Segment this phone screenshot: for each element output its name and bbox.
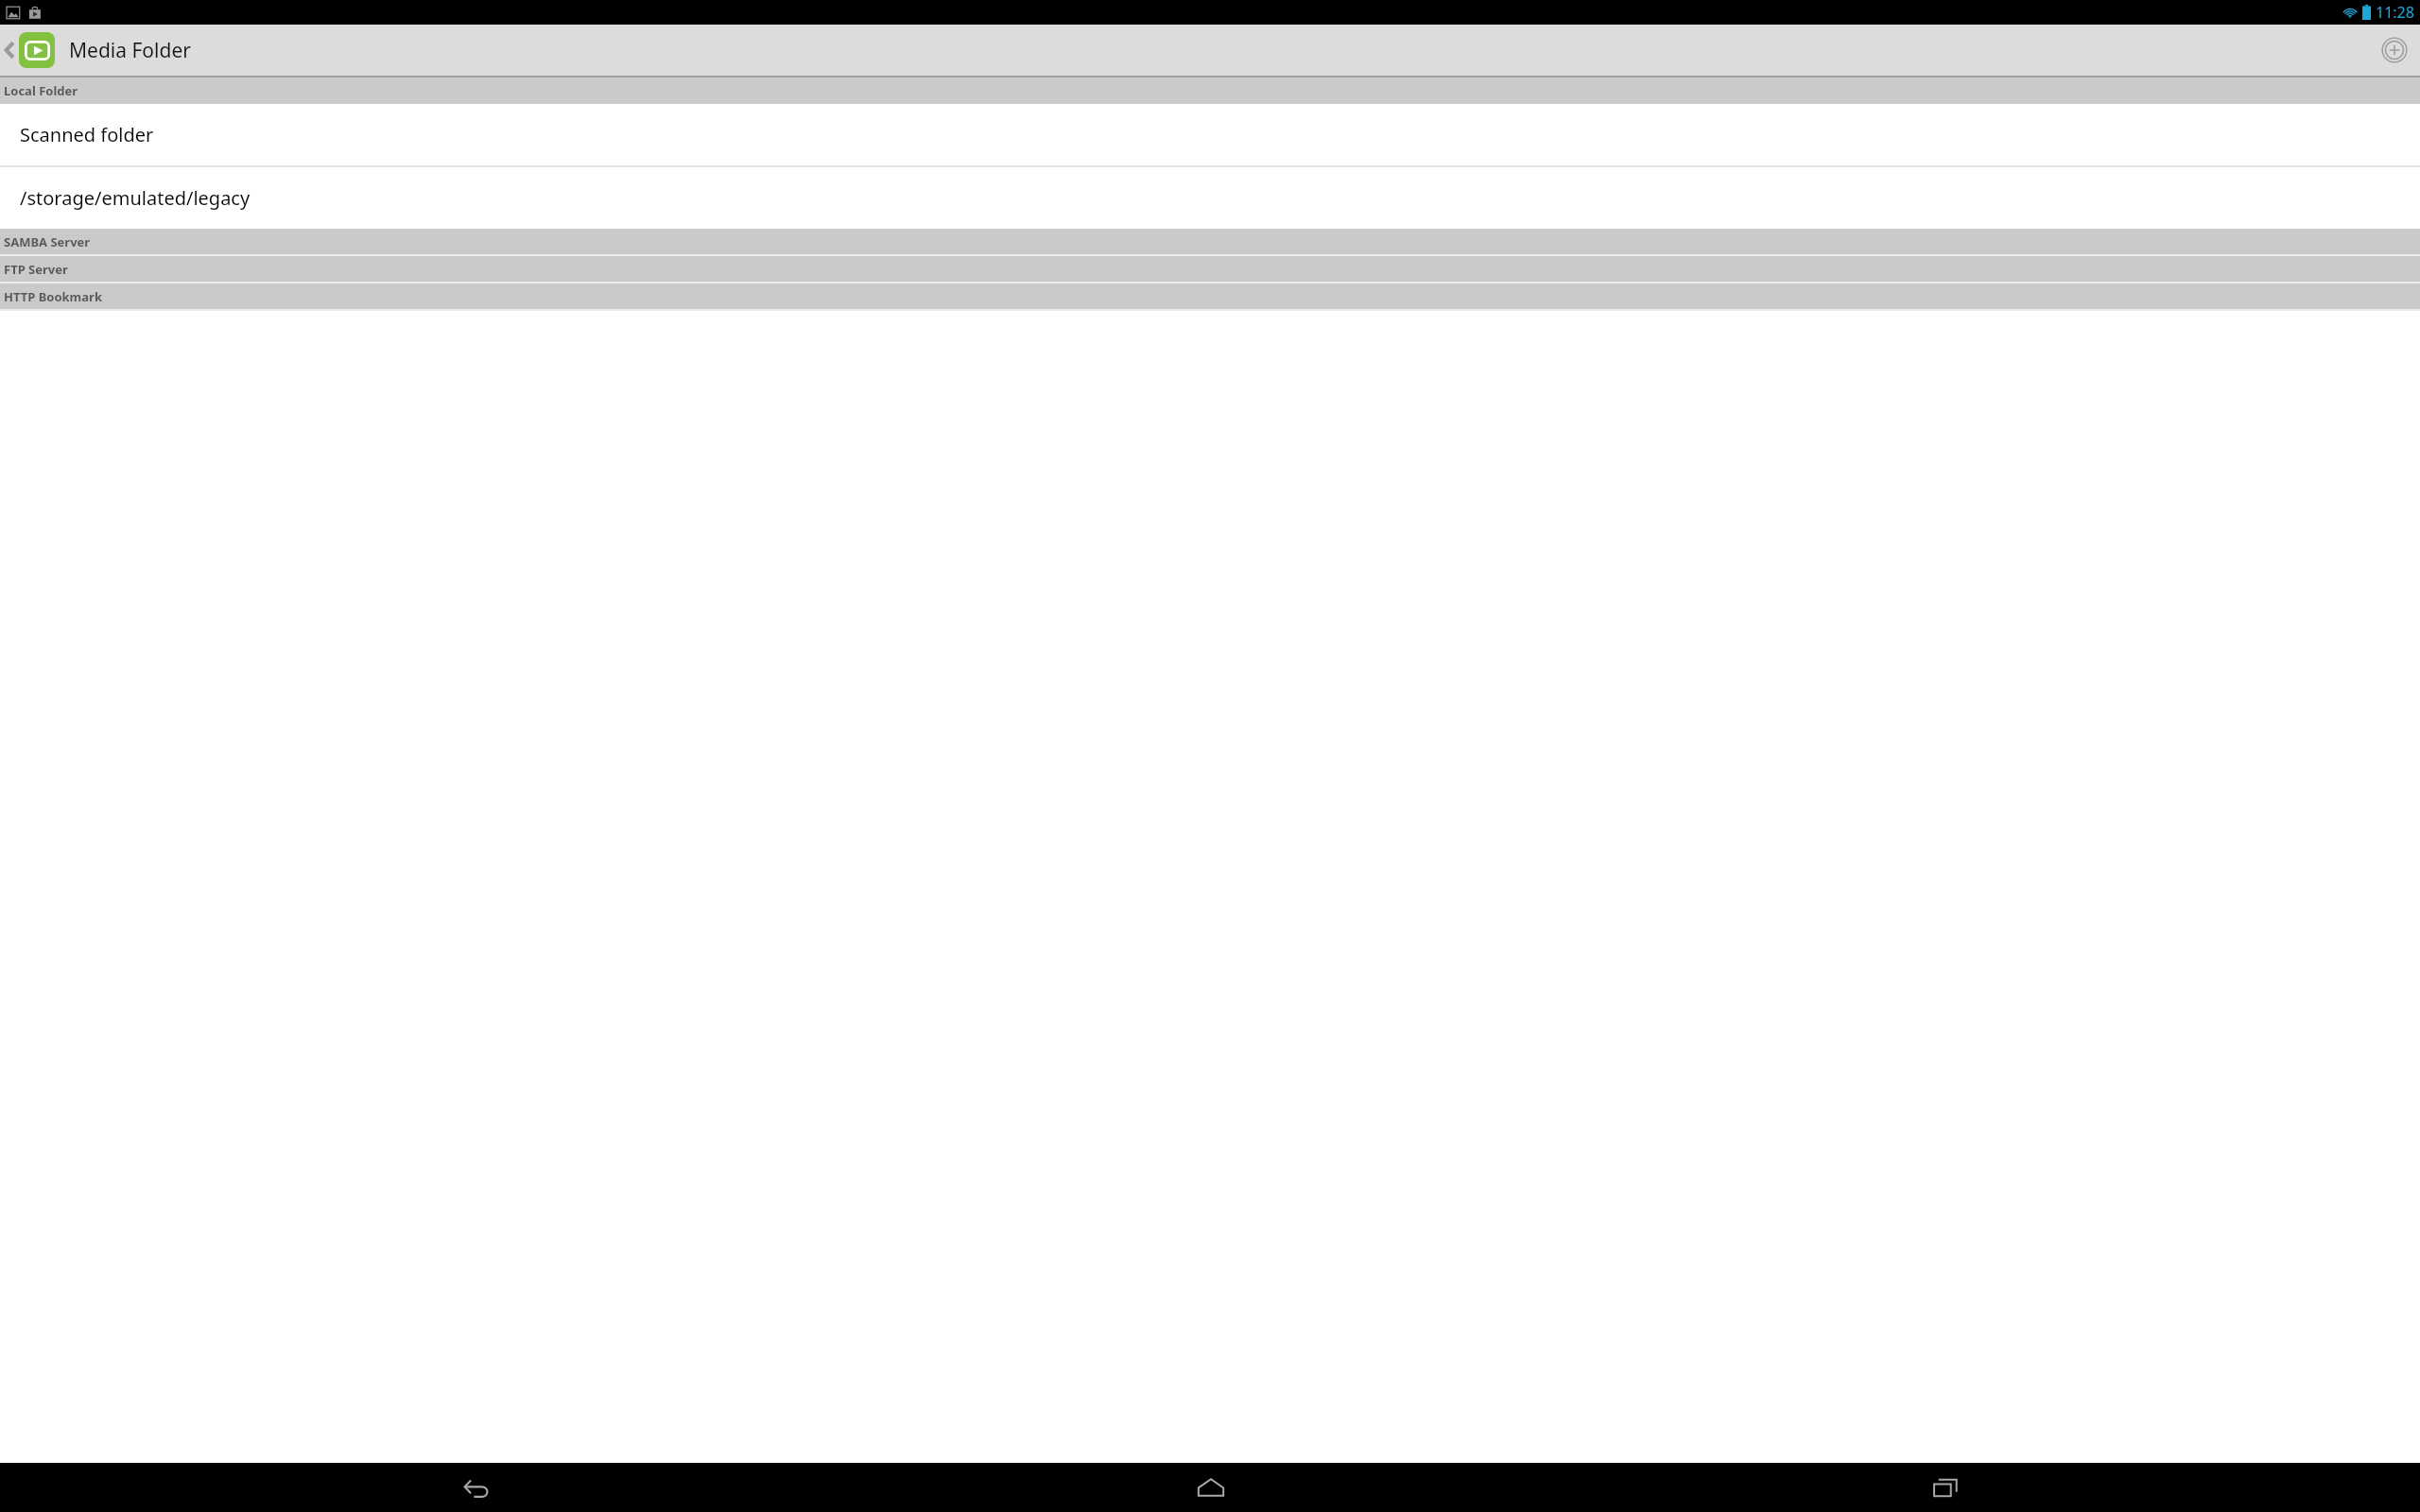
staticText: FTP Server bbox=[4, 261, 68, 278]
staticText: Media Folder bbox=[69, 37, 191, 64]
button[interactable]: /storage/emulated/legacy bbox=[0, 167, 2420, 229]
button[interactable]: Scanned folder bbox=[0, 104, 2420, 165]
staticText: HTTP Bookmark bbox=[4, 288, 102, 305]
button[interactable]: Navigate up bbox=[0, 25, 200, 76]
other: Navigate up bbox=[3, 38, 16, 62]
button[interactable]: Add bbox=[2369, 25, 2420, 76]
button[interactable]: SAMBA Server bbox=[0, 229, 2420, 254]
button[interactable]: Recent apps bbox=[1777, 1463, 2114, 1512]
staticText: SAMBA Server bbox=[4, 233, 91, 250]
button[interactable]: Local Folder bbox=[0, 77, 2420, 104]
button[interactable]: FTP Server bbox=[0, 256, 2420, 282]
button[interactable]: HTTP Bookmark bbox=[0, 283, 2420, 309]
staticText: 11:28 bbox=[2376, 2, 2414, 23]
staticText: /storage/emulated/legacy bbox=[20, 185, 251, 211]
button[interactable]: Home bbox=[1043, 1463, 1379, 1512]
staticText: Scanned folder bbox=[20, 122, 154, 147]
staticText: Local Folder bbox=[4, 82, 78, 99]
button[interactable]: Back bbox=[307, 1463, 645, 1512]
